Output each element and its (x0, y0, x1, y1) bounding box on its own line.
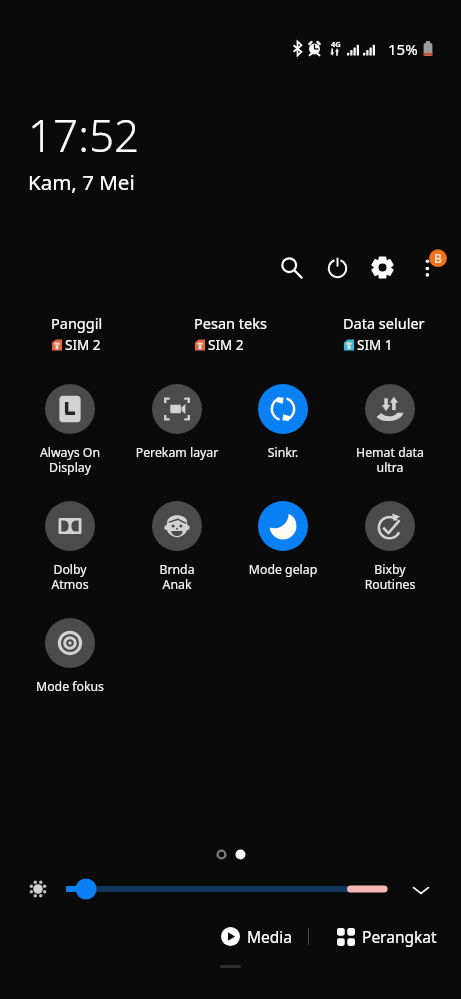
staticText: Bixby Routines (337, 561, 443, 593)
button[interactable]: Mode fokus (17, 614, 123, 695)
staticText: Media (247, 926, 293, 947)
button[interactable]: More options (412, 244, 458, 290)
button[interactable]: Sinkr. (230, 380, 336, 461)
button[interactable]: Dolby Atmos (17, 497, 123, 593)
staticText: Perekam layar (124, 444, 230, 461)
button[interactable]: Panggil (51, 313, 103, 354)
staticText: Kam, 7 Mei (28, 168, 135, 196)
staticText: 15% (388, 39, 418, 59)
button[interactable]: Hemat data ultra (337, 380, 443, 476)
staticText: Mode gelap (230, 561, 336, 578)
button[interactable]: Mode gelap (230, 497, 336, 578)
button[interactable]: Perekam layar (124, 380, 230, 461)
button[interactable]: Data seluler (343, 313, 425, 354)
button[interactable] (66, 877, 384, 901)
staticText: Dolby Atmos (17, 561, 123, 593)
staticText: Brnda Anak (124, 561, 230, 593)
button[interactable]: Power (314, 244, 360, 290)
staticText: Sinkr. (230, 444, 336, 461)
staticText: Pesan teks (194, 313, 267, 333)
button[interactable]: Settings (359, 244, 405, 290)
button[interactable]: Media (215, 922, 299, 951)
staticText: SIM 1 (357, 336, 393, 354)
staticText: SIM 2 (208, 336, 244, 354)
staticText: Panggil (51, 313, 103, 333)
staticText: Perangkat (362, 926, 437, 947)
button[interactable]: Always On Display (17, 380, 123, 476)
button[interactable]: Bixby Routines (337, 497, 443, 593)
staticText: Mode fokus (17, 678, 123, 695)
button[interactable]: Brnda Anak (124, 497, 230, 593)
staticText: 17:52 (28, 105, 140, 165)
staticText: Always On Display (17, 444, 123, 476)
staticText: Hemat data ultra (337, 444, 443, 476)
staticText: B (434, 250, 442, 266)
staticText: 4G (331, 39, 341, 49)
button[interactable]: Pesan teks (194, 313, 267, 354)
staticText: SIM 2 (65, 336, 101, 354)
button[interactable]: Search (268, 244, 314, 290)
staticText: Data seluler (343, 313, 425, 333)
button[interactable]: Perangkat (331, 922, 443, 951)
button[interactable]: Expand (406, 875, 435, 904)
